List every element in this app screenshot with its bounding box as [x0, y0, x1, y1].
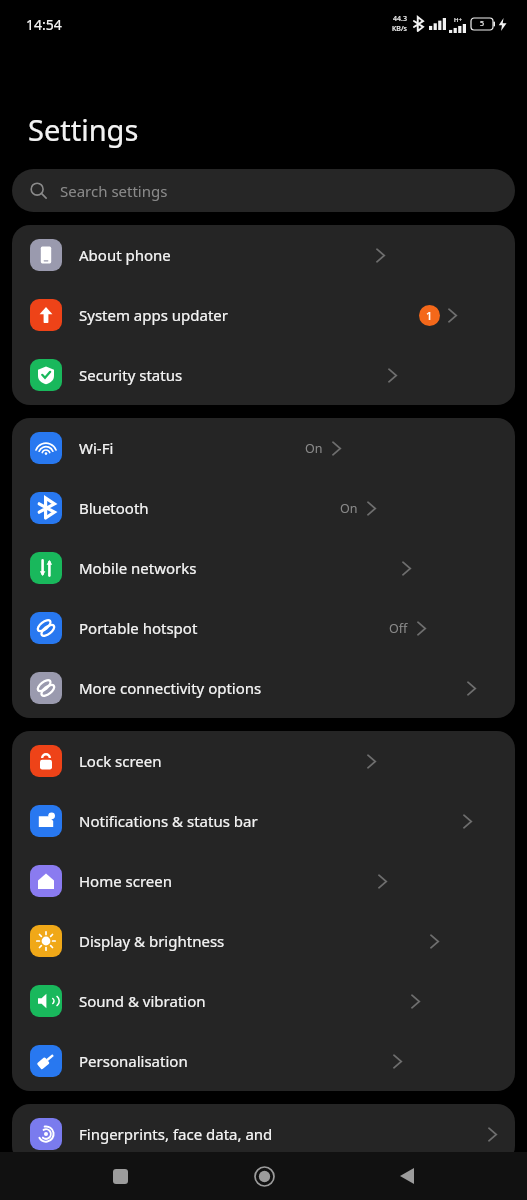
- button[interactable]: Wi-Fi: [12, 418, 515, 478]
- staticText: 5: [480, 19, 485, 29]
- other: Open: [376, 248, 385, 263]
- staticText: Security status: [79, 365, 183, 385]
- button[interactable]: Security status: [12, 345, 515, 405]
- other: Open: [463, 814, 472, 829]
- button[interactable]: Fingerprints, face data, and screen lock: [12, 1104, 515, 1164]
- button[interactable]: More connectivity options: [12, 658, 515, 718]
- staticText: KB/s: [392, 24, 407, 34]
- button[interactable]: Display & brightness: [12, 911, 515, 971]
- staticText: System apps updater: [79, 305, 229, 325]
- button[interactable]: About phone: [12, 225, 515, 285]
- staticText: Bluetooth: [79, 498, 149, 518]
- other: Open: [411, 994, 420, 1009]
- staticText: Mobile networks: [79, 558, 197, 578]
- staticText: Display & brightness: [79, 931, 225, 951]
- button[interactable]: Personalisation: [12, 1031, 515, 1091]
- staticText: Settings: [28, 110, 139, 149]
- button[interactable]: Sound & vibration: [12, 971, 515, 1031]
- button[interactable]: Lock screen: [12, 731, 515, 791]
- staticText: 1: [426, 308, 433, 323]
- other: Open: [367, 501, 376, 516]
- button[interactable]: Mobile networks: [12, 538, 515, 598]
- button[interactable]: Search settings: [12, 169, 515, 212]
- other: Open: [367, 754, 376, 769]
- staticText: H+: [454, 16, 462, 24]
- other: Open: [402, 561, 411, 576]
- other: Open: [417, 621, 426, 636]
- button[interactable]: Recents: [96, 1152, 144, 1200]
- staticText: Portable hotspot: [79, 618, 198, 638]
- button[interactable]: Bluetooth: [12, 478, 515, 538]
- other: Open: [430, 934, 439, 949]
- staticText: Sound & vibration: [79, 991, 206, 1011]
- staticText: 14:54: [26, 15, 62, 34]
- staticText: Search settings: [60, 181, 168, 201]
- button[interactable]: Portable hotspot: [12, 598, 515, 658]
- other: Open: [378, 874, 387, 889]
- staticText: Home screen: [79, 871, 173, 891]
- staticText: Notifications & status bar: [79, 811, 258, 831]
- other: Open: [448, 308, 457, 323]
- staticText: Personalisation: [79, 1051, 188, 1071]
- staticText: On: [340, 500, 358, 517]
- button[interactable]: Home: [240, 1152, 288, 1200]
- button[interactable]: Notifications & status bar: [12, 791, 515, 851]
- staticText: More connectivity options: [79, 678, 262, 698]
- staticText: Wi-Fi: [79, 438, 114, 458]
- staticText: On: [305, 440, 323, 457]
- staticText: Off: [389, 620, 408, 637]
- button[interactable]: Home screen: [12, 851, 515, 911]
- staticText: Lock screen: [79, 751, 162, 771]
- staticText: About phone: [79, 245, 171, 265]
- staticText: 44.3: [393, 14, 407, 24]
- button[interactable]: Back: [383, 1152, 431, 1200]
- other: Open: [393, 1054, 402, 1069]
- button[interactable]: System apps updater: [12, 285, 515, 345]
- staticText: Fingerprints, face data, and screen lock: [79, 1124, 283, 1144]
- other: Open: [388, 368, 397, 383]
- other: Open: [332, 441, 341, 456]
- other: Open: [467, 681, 476, 696]
- other: Open: [488, 1127, 497, 1142]
